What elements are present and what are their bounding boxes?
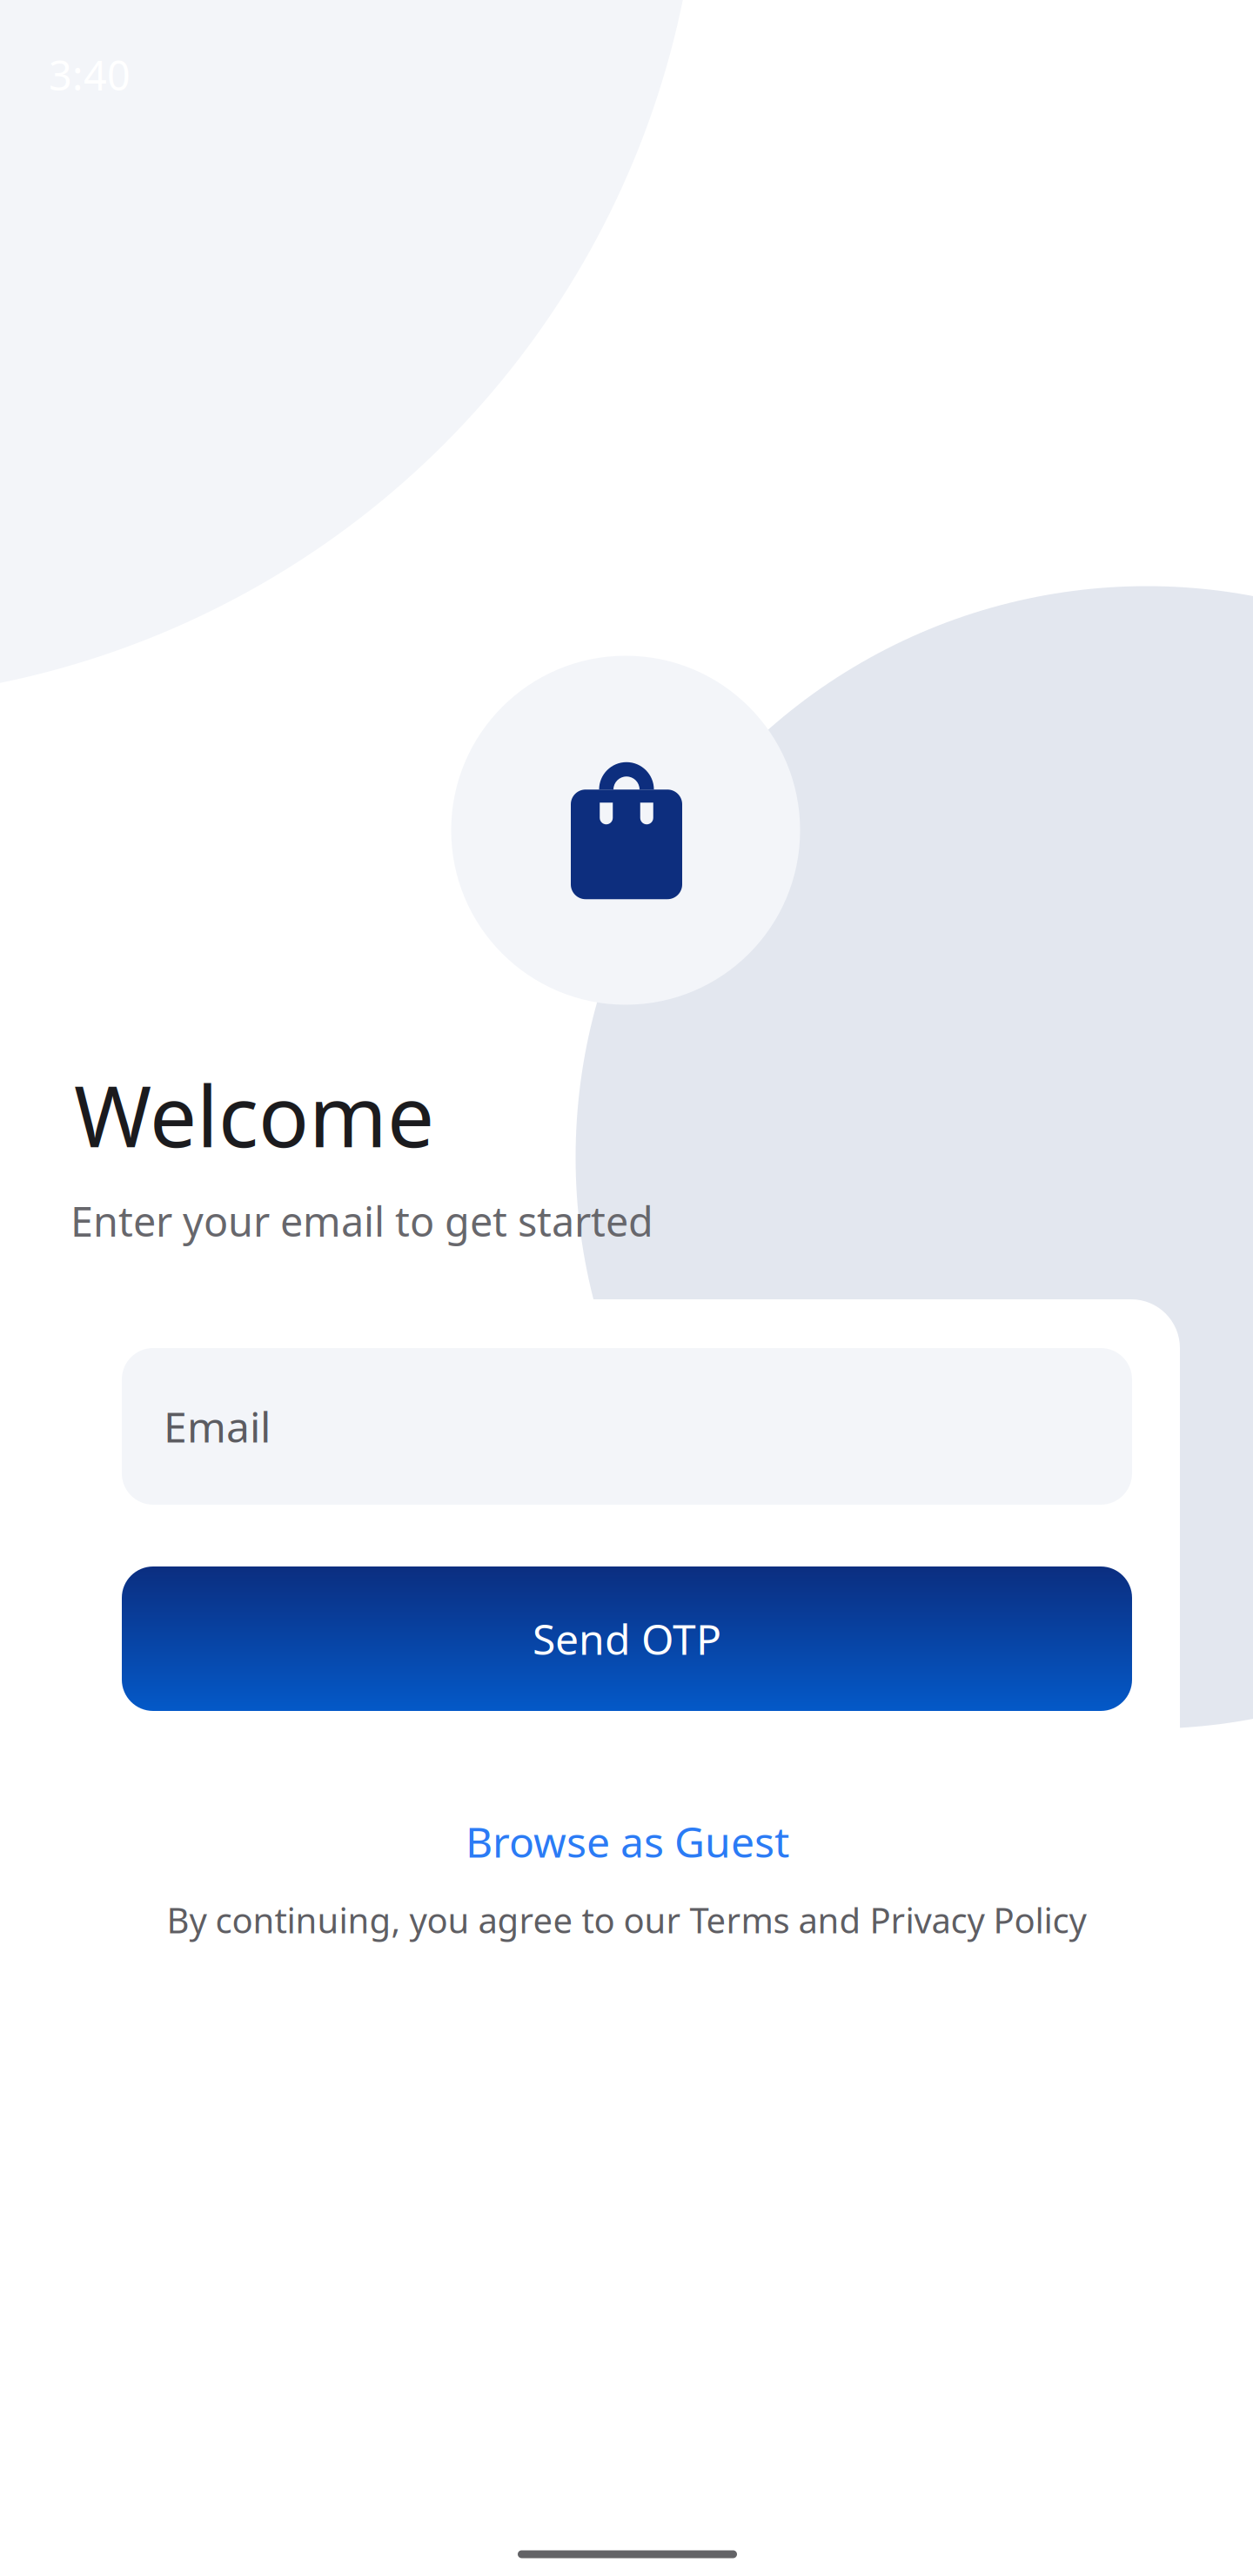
staticText: Email: [164, 1399, 271, 1454]
button[interactable]: Email: [122, 1348, 1132, 1505]
staticText: Welcome: [74, 1059, 434, 1170]
staticText: Browse as Guest: [466, 1814, 789, 1869]
button[interactable]: Browse as Guest: [401, 1800, 854, 1883]
staticText: Send OTP: [533, 1611, 721, 1666]
button[interactable]: Send OTP: [122, 1566, 1132, 1711]
staticText: 3:40: [49, 48, 131, 102]
staticText: Enter your email to get started: [70, 1194, 653, 1248]
staticText: By continuing, you agree to our Terms an…: [167, 1897, 1086, 1943]
